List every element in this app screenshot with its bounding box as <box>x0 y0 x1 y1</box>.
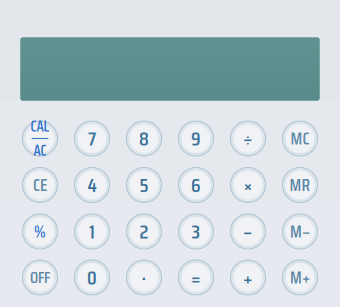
staticText: OFF <box>30 265 50 290</box>
staticText: · <box>141 261 146 294</box>
staticText: 9 <box>191 123 201 154</box>
staticText: 1 <box>89 216 95 247</box>
staticText: 0 <box>87 262 97 293</box>
button[interactable]: Memory recall <box>280 165 320 205</box>
staticText: MC <box>290 125 309 152</box>
button[interactable]: Memory clear <box>280 118 320 158</box>
staticText: ÷ <box>243 123 253 154</box>
button[interactable]: 9 <box>176 118 216 158</box>
button[interactable]: Off <box>20 257 60 297</box>
button[interactable]: Memory subtract <box>280 211 320 251</box>
button[interactable]: 0 <box>72 257 112 297</box>
button[interactable]: 7 <box>72 118 112 158</box>
staticText: M− <box>290 218 310 245</box>
button[interactable]: Subtract <box>228 211 268 251</box>
button[interactable]: Memory add <box>280 257 320 297</box>
staticText: M+ <box>290 264 310 291</box>
button[interactable]: Clear entry <box>20 165 60 205</box>
button[interactable]: 8 <box>124 118 164 158</box>
button[interactable]: Multiply <box>228 165 268 205</box>
staticText: + <box>243 262 253 293</box>
button[interactable]: 6 <box>176 165 216 205</box>
staticText: 2 <box>139 216 148 247</box>
staticText: 6 <box>191 169 201 201</box>
staticText: CAL <box>30 115 49 138</box>
staticText: CE <box>33 171 47 199</box>
button[interactable]: Divide <box>228 118 268 158</box>
button[interactable]: 1 <box>72 211 112 251</box>
staticText: MR <box>289 171 310 199</box>
staticText: 8 <box>139 123 149 154</box>
button[interactable]: 5 <box>124 165 164 205</box>
staticText: = <box>191 262 201 293</box>
button[interactable]: Add <box>228 257 268 297</box>
staticText: 3 <box>191 216 200 247</box>
button[interactable]: Percent <box>20 211 60 251</box>
button[interactable]: Equals <box>176 257 216 297</box>
button[interactable]: Decimal point <box>124 257 164 297</box>
button[interactable]: 2 <box>124 211 164 251</box>
staticText: AC <box>33 139 46 162</box>
button[interactable]: 4 <box>72 165 112 205</box>
staticText: 4 <box>87 169 96 201</box>
button[interactable]: Calculate, all clear <box>20 118 60 158</box>
staticText: 5 <box>139 169 148 201</box>
staticText: − <box>243 216 253 247</box>
button[interactable]: 3 <box>176 211 216 251</box>
staticText: % <box>34 218 46 245</box>
staticText: × <box>243 169 252 201</box>
staticText: 7 <box>88 123 96 154</box>
